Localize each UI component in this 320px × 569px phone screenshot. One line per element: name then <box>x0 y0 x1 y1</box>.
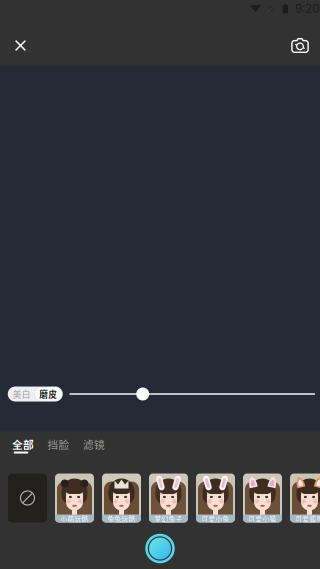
staticText: 兔兔玩酷 <box>107 514 135 523</box>
button[interactable]: 全部 <box>11 438 35 454</box>
button[interactable]: 美白 <box>8 386 35 401</box>
button[interactable]: Switch camera <box>280 25 320 65</box>
staticText: 美白 <box>13 388 31 400</box>
staticText: 小萌玩酷 <box>60 514 88 523</box>
button[interactable]: 可爱狐狸 <box>290 473 320 522</box>
button[interactable]: 梦幻兔子 <box>149 473 188 522</box>
button[interactable]: 挡脸 <box>46 438 70 454</box>
button[interactable]: 小萌玩酷 <box>55 473 94 522</box>
button[interactable]: Close <box>0 25 41 65</box>
staticText: 可爱狐狸 <box>295 514 320 523</box>
button[interactable]: 兔兔玩酷 <box>102 473 141 522</box>
button[interactable]: 可爱小猫 <box>243 473 282 522</box>
staticText: 可爱小猫 <box>248 514 276 523</box>
staticText: 滤镜 <box>83 436 105 452</box>
button[interactable]: Shutter <box>145 533 175 563</box>
button[interactable]: 可爱小兔 <box>196 473 235 522</box>
staticText: 全部 <box>12 436 34 452</box>
staticText: 可爱小兔 <box>201 514 229 523</box>
button[interactable]: No effect <box>8 473 47 522</box>
staticText: 挡脸 <box>47 436 69 452</box>
staticText: 梦幻兔子 <box>154 514 182 523</box>
button[interactable]: 磨皮 <box>35 387 61 400</box>
staticText: 磨皮 <box>39 388 57 400</box>
staticText: 9:20 <box>295 1 320 16</box>
button[interactable]: 滤镜 <box>82 438 106 454</box>
